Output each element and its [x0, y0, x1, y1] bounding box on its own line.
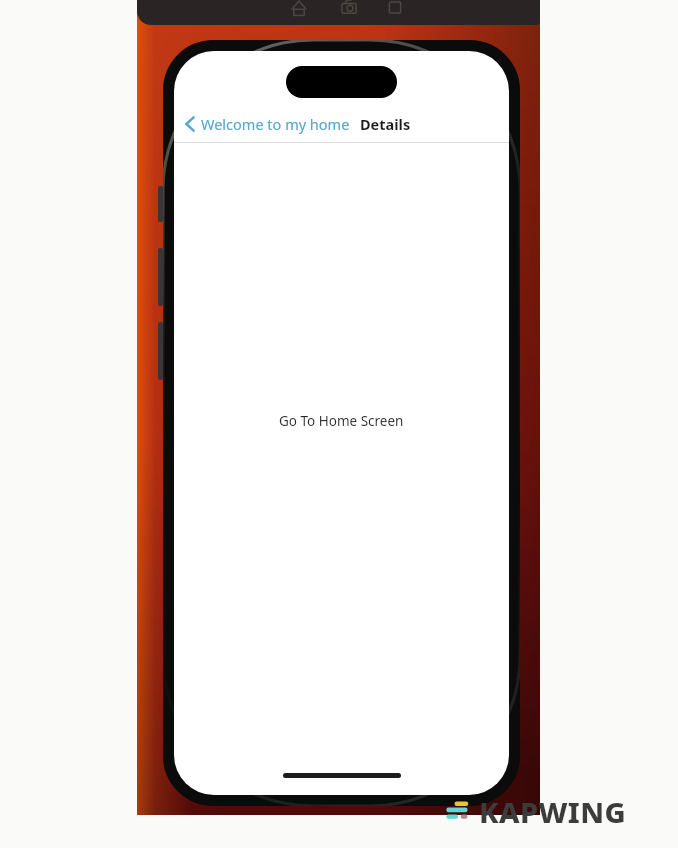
- button[interactable]: Back: [180, 111, 353, 137]
- staticText: Welcome to my home: [201, 114, 350, 134]
- staticText: Go To Home Screen: [279, 412, 404, 430]
- button[interactable]: Go To Home Screen: [269, 406, 414, 436]
- staticText: Details: [360, 114, 411, 134]
- staticText: KAPWING: [479, 792, 627, 831]
- other: Back: [183, 113, 197, 135]
